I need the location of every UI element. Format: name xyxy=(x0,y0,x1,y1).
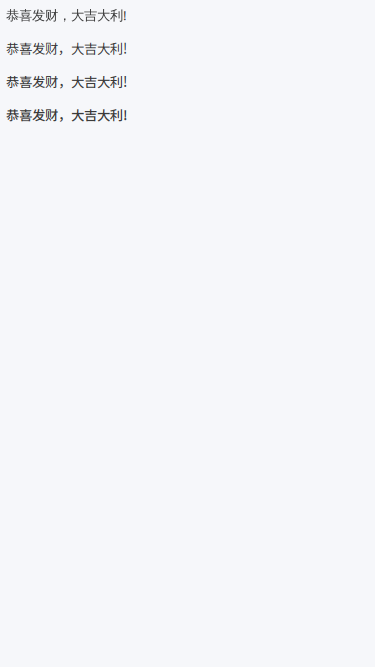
staticText: 恭喜发财，大吉大利! xyxy=(6,71,127,91)
staticText: 恭喜发财，大吉大利! xyxy=(6,38,127,57)
staticText: 恭喜发财，大吉大利! xyxy=(6,105,128,124)
staticText: 恭喜发财，大吉大利! xyxy=(6,6,127,24)
